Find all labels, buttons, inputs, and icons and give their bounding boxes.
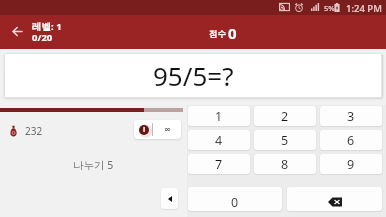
staticText: 7 bbox=[215, 156, 223, 173]
staticText: 1:24 PM bbox=[346, 2, 382, 15]
button[interactable]: Hint bbox=[134, 120, 181, 139]
button[interactable]: 3 bbox=[320, 106, 382, 126]
button[interactable]: Back bbox=[3, 17, 31, 45]
staticText: 4 bbox=[215, 132, 223, 149]
staticText: 3 bbox=[347, 108, 355, 125]
button[interactable]: 6 bbox=[320, 130, 382, 150]
staticText: 9 bbox=[347, 156, 355, 173]
button[interactable]: 7 bbox=[188, 154, 250, 174]
staticText: 95/5=? bbox=[153, 58, 234, 93]
button[interactable]: 1 bbox=[188, 106, 250, 126]
button[interactable]: 8 bbox=[254, 154, 316, 174]
staticText: 8 bbox=[281, 156, 289, 173]
staticText: 나누기 5 bbox=[73, 158, 114, 172]
staticText: 0/20 bbox=[32, 31, 53, 44]
staticText: 5% bbox=[324, 3, 335, 13]
button[interactable]: 5 bbox=[254, 130, 316, 150]
staticText: 6 bbox=[347, 132, 355, 149]
staticText: 점수 bbox=[209, 29, 226, 40]
staticText: 0 bbox=[228, 23, 237, 43]
staticText: 0 bbox=[231, 194, 239, 211]
button[interactable]: 0 bbox=[188, 187, 282, 211]
staticText: 2 bbox=[281, 108, 289, 125]
button[interactable]: Hide keyboard bbox=[161, 188, 178, 209]
button[interactable]: Backspace bbox=[287, 187, 382, 211]
button[interactable]: 2 bbox=[254, 106, 316, 126]
staticText: 232 bbox=[25, 124, 43, 138]
button[interactable]: 4 bbox=[188, 130, 250, 150]
staticText: 5 bbox=[281, 132, 289, 149]
staticText: 1 bbox=[215, 108, 223, 125]
button[interactable]: 9 bbox=[320, 154, 382, 174]
staticText: ∞ bbox=[164, 125, 171, 134]
staticText: 레벨: 1 bbox=[32, 20, 62, 33]
